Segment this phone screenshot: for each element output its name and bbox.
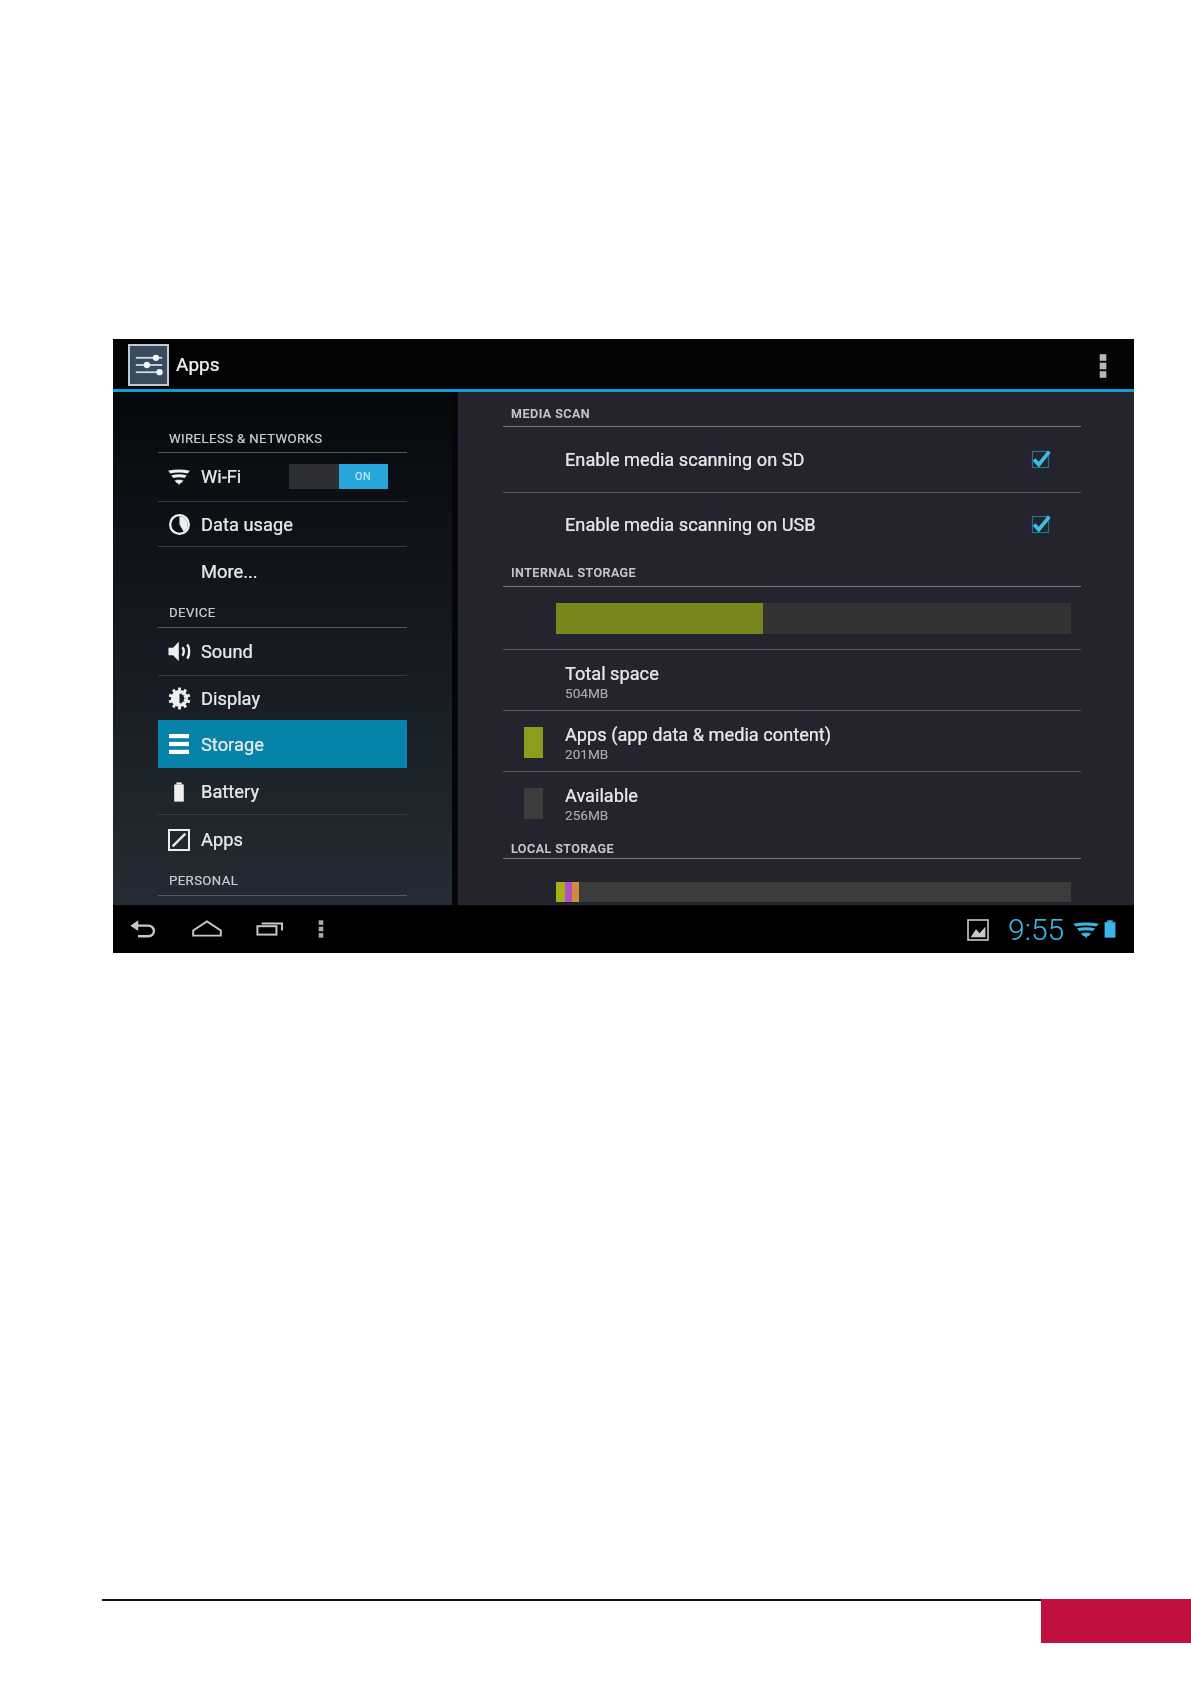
staticText: INTERNAL STORAGE — [511, 565, 637, 580]
button[interactable]: Total space — [458, 650, 1134, 710]
button[interactable]: Available — [458, 772, 1134, 833]
button[interactable]: Storage — [158, 720, 407, 768]
staticText: WIRELESS & NETWORKS — [169, 431, 323, 446]
staticText: Enable media scanning on USB — [565, 514, 816, 535]
button[interactable]: Apps — [158, 815, 407, 864]
button[interactable]: Back — [121, 907, 165, 951]
staticText: Sound — [201, 641, 253, 662]
staticText: Apps — [176, 353, 220, 375]
staticText: ON — [355, 470, 372, 483]
button[interactable]: Display — [158, 676, 407, 720]
staticText: More... — [201, 561, 258, 582]
button[interactable]: More... — [158, 547, 407, 595]
staticText: Display — [201, 688, 261, 709]
staticText: Enable media scanning on SD — [565, 449, 805, 470]
staticText: LOCAL STORAGE — [511, 841, 615, 856]
button[interactable]: Data usage — [158, 502, 407, 546]
button[interactable]: Wi-Fi — [158, 453, 407, 500]
staticText: 504MB — [565, 685, 609, 701]
staticText: Wi-Fi — [201, 466, 242, 487]
button[interactable]: Enable media scanning on USB — [458, 493, 1134, 556]
staticText: Battery — [201, 781, 260, 802]
staticText: Apps (app data & media content) — [565, 724, 832, 745]
staticText: Total space — [565, 663, 659, 684]
button[interactable]: More options — [1081, 344, 1125, 388]
button[interactable]: Menu — [303, 911, 339, 947]
staticText: 256MB — [565, 807, 609, 823]
staticText: Apps — [201, 829, 243, 850]
staticText: 9:55 — [1008, 912, 1065, 947]
button[interactable]: Battery — [158, 769, 407, 814]
staticText: PERSONAL — [169, 873, 239, 888]
button[interactable]: Enable media scanning on SD — [458, 427, 1134, 492]
button[interactable]: Home — [185, 907, 229, 951]
staticText: MEDIA SCAN — [511, 406, 591, 421]
button[interactable]: Recent apps — [248, 907, 292, 951]
button[interactable]: Apps (app data & media content) — [458, 711, 1134, 771]
staticText: Data usage — [201, 514, 293, 535]
staticText: Storage — [201, 734, 264, 755]
button[interactable]: Sound — [158, 628, 407, 674]
staticText: 201MB — [565, 746, 609, 762]
staticText: DEVICE — [169, 605, 216, 620]
staticText: Available — [565, 785, 639, 806]
